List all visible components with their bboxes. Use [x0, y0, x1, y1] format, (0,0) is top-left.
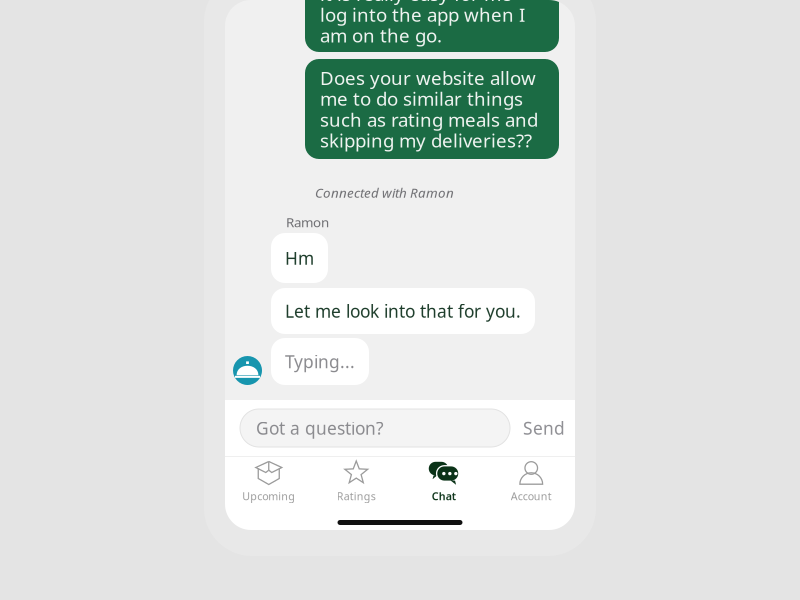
staticText: Account [511, 489, 552, 503]
button[interactable]: Got a question? [240, 409, 510, 447]
button[interactable]: Account [487, 457, 575, 504]
button[interactable]: Upcoming [225, 457, 312, 504]
staticText: Got a question? [256, 416, 384, 439]
staticText: Typing... [285, 350, 355, 373]
staticText: Ramon [286, 213, 329, 231]
staticText: Does your website allow me to do similar… [320, 65, 538, 153]
button[interactable]: Send [523, 409, 575, 447]
staticText: Hm [285, 246, 314, 269]
staticText: Ratings [337, 489, 376, 503]
staticText: Chat [432, 489, 456, 503]
staticText: Upcoming [242, 489, 295, 503]
staticText: Connected with Ramon [315, 184, 454, 201]
button[interactable]: Ratings [312, 457, 400, 504]
staticText: it is really easy for me log into the ap… [320, 0, 525, 48]
button[interactable]: Chat [400, 457, 487, 504]
staticText: Let me look into that for you. [285, 299, 521, 322]
staticText: Send [523, 416, 565, 439]
